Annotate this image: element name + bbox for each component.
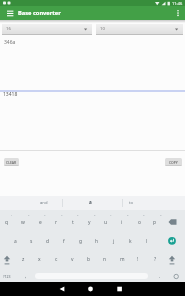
staticText: s: [30, 238, 33, 245]
button[interactable]: x: [32, 251, 46, 267]
button[interactable]: .: [153, 268, 167, 284]
button[interactable]: z: [16, 251, 30, 267]
button[interactable]: ,: [19, 268, 33, 284]
staticText: d: [46, 238, 50, 245]
button[interactable]: p: [148, 214, 162, 230]
button[interactable]: i: [115, 214, 129, 230]
staticText: x: [38, 256, 41, 263]
staticText: j: [113, 238, 115, 245]
button[interactable]: b: [82, 251, 96, 267]
button[interactable]: 10: [96, 24, 183, 35]
staticText: 0: [160, 213, 162, 216]
staticText: 2: [28, 213, 30, 216]
button[interactable]: [0, 6, 185, 20]
button[interactable]: c: [49, 251, 63, 267]
button[interactable]: k: [123, 233, 137, 249]
button[interactable]: j: [107, 233, 121, 249]
button[interactable]: [0, 196, 185, 210]
button[interactable]: l: [140, 233, 154, 249]
button[interactable]: h: [90, 233, 104, 249]
button[interactable]: u: [99, 214, 113, 230]
staticText: h: [95, 238, 99, 245]
staticText: m: [120, 256, 125, 263]
staticText: 9: [143, 213, 145, 216]
staticText: !: [137, 256, 139, 263]
staticText: 7: [110, 213, 112, 216]
staticText: l: [146, 238, 148, 245]
staticText: p: [153, 219, 157, 226]
staticText: i: [121, 219, 123, 226]
staticText: r: [55, 219, 58, 226]
button[interactable]: t: [66, 214, 80, 230]
staticText: 346a: [4, 39, 16, 46]
button[interactable]: r: [49, 214, 63, 230]
staticText: COPY: [169, 160, 178, 165]
staticText: to: [129, 200, 134, 206]
staticText: a: [14, 238, 17, 245]
staticText: ,: [25, 273, 27, 280]
staticText: 1: [11, 213, 13, 216]
staticText: q: [5, 219, 9, 226]
button[interactable]: o: [132, 214, 146, 230]
staticText: 16: [6, 26, 11, 32]
staticText: 8: [127, 213, 129, 216]
button[interactable]: d: [41, 233, 55, 249]
staticText: 6: [94, 213, 96, 216]
button[interactable]: q: [0, 214, 14, 230]
staticText: o: [138, 219, 141, 226]
button[interactable]: a: [8, 233, 22, 249]
staticText: w: [21, 219, 25, 226]
button[interactable]: CLEAR: [4, 158, 19, 166]
staticText: z: [22, 256, 25, 263]
button[interactable]: w: [16, 214, 30, 230]
button[interactable]: v: [65, 251, 79, 267]
button[interactable]: f: [57, 233, 71, 249]
button[interactable]: COPY: [165, 158, 182, 166]
button[interactable]: y: [82, 214, 96, 230]
staticText: a: [89, 199, 92, 205]
staticText: 5: [77, 213, 79, 216]
staticText: f: [63, 238, 65, 245]
button[interactable]: n: [98, 251, 112, 267]
button[interactable]: g: [74, 233, 88, 249]
staticText: n: [103, 256, 107, 263]
button[interactable]: e: [33, 214, 47, 230]
staticText: 4: [61, 213, 63, 216]
staticText: t: [72, 219, 74, 226]
staticText: g: [79, 238, 83, 245]
staticText: and: [40, 200, 48, 206]
button[interactable]: s: [24, 233, 38, 249]
button[interactable]: !: [131, 251, 145, 267]
staticText: c: [55, 256, 58, 263]
staticText: ?123: [3, 274, 11, 279]
staticText: k: [129, 238, 132, 245]
staticText: 13418: [3, 91, 18, 98]
staticText: 10: [100, 26, 105, 32]
staticText: u: [104, 219, 108, 226]
staticText: CLEAR: [6, 160, 17, 165]
staticText: 11:46: [172, 1, 183, 6]
staticText: ?: [154, 256, 157, 263]
staticText: 3: [44, 213, 46, 216]
button[interactable]: m: [115, 251, 129, 267]
staticText: b: [87, 256, 91, 263]
staticText: e: [39, 219, 42, 226]
staticText: y: [88, 219, 91, 226]
button[interactable]: 16: [2, 24, 92, 35]
staticText: v: [71, 256, 74, 263]
button[interactable]: ?: [148, 251, 162, 267]
staticText: Base converter: [18, 9, 61, 17]
staticText: .: [159, 273, 161, 280]
